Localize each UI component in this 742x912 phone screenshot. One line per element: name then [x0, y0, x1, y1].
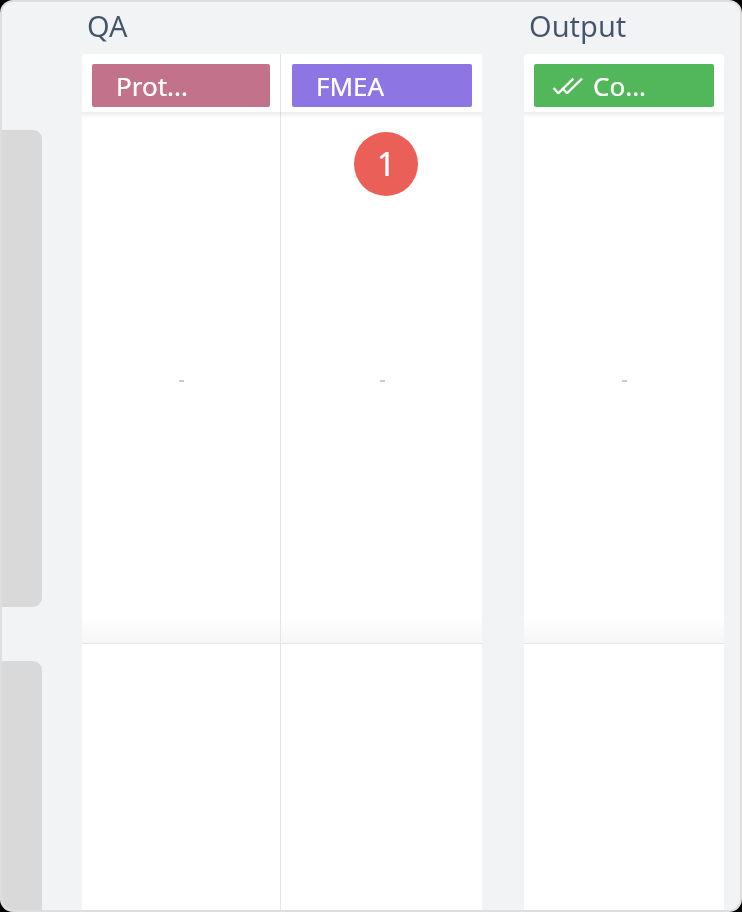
staticText: FMEA [316, 68, 385, 103]
button[interactable]: QA [87, 6, 128, 45]
staticText: 1 [377, 142, 396, 186]
button[interactable]: FMEA [292, 64, 472, 107]
button[interactable]: Swimlane 2 [2, 661, 42, 910]
button[interactable]: Completed [534, 64, 714, 107]
button[interactable]: Output [529, 6, 627, 45]
button[interactable]: Prot... [92, 64, 270, 107]
button[interactable]: FMEA column [281, 113, 482, 643]
staticText: Co... [593, 68, 647, 103]
other: Completed [553, 78, 582, 94]
staticText: Prot... [116, 68, 188, 103]
button[interactable]: 1 card [354, 132, 418, 196]
